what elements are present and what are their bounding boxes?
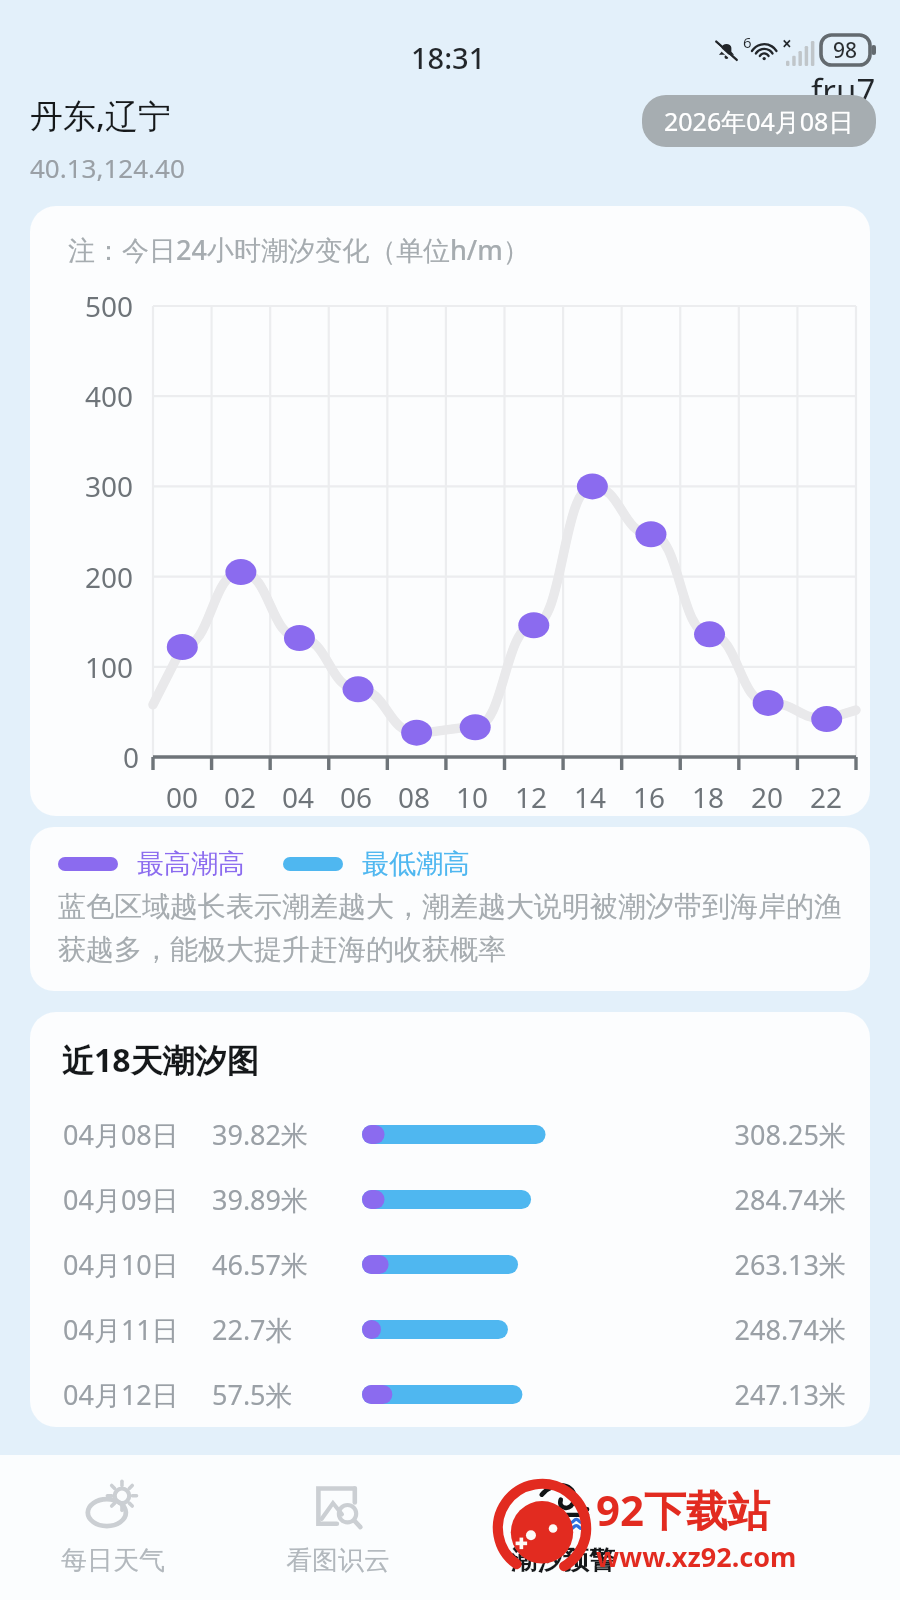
button[interactable]: 04月12日 — [30, 1362, 870, 1427]
staticText: 16 — [633, 778, 666, 816]
button[interactable]: 04月11日 — [30, 1297, 870, 1362]
button[interactable]: 2026年04月08日 — [642, 95, 876, 147]
staticText: 00 — [166, 778, 199, 816]
staticText: www.xz92.com — [596, 1538, 797, 1575]
staticText: 247.13米 — [651, 1376, 846, 1413]
staticText: 06 — [340, 778, 373, 816]
staticText: 57.5米 — [212, 1376, 362, 1413]
staticText: 02 — [224, 778, 257, 816]
staticText: 20 — [751, 778, 784, 816]
staticText: 248.74米 — [651, 1311, 846, 1348]
button[interactable]: 每日天气 — [0, 1455, 225, 1600]
staticText: 18:31 — [411, 38, 486, 77]
staticText: 丹东,辽宁 — [30, 93, 172, 138]
staticText: 04 — [282, 778, 315, 816]
staticText: 100 — [85, 648, 134, 686]
button[interactable]: 潮汐预警 — [450, 1455, 675, 1600]
button[interactable]: 04月08日 — [30, 1102, 870, 1167]
other: 每日天气 — [85, 1479, 141, 1535]
button[interactable]: 04月10日 — [30, 1232, 870, 1297]
staticText: 263.13米 — [651, 1246, 846, 1283]
button[interactable]: 04月09日 — [30, 1167, 870, 1232]
staticText: 10 — [456, 778, 489, 816]
staticText: 04月08日 — [63, 1116, 198, 1153]
other: 潮汐预警 — [535, 1479, 591, 1535]
staticText: 04月10日 — [63, 1246, 198, 1283]
staticText: fru7 — [811, 68, 876, 113]
button[interactable]: 看图识云 — [225, 1455, 450, 1600]
staticText: 92下载站 — [596, 1481, 771, 1538]
staticText: 0 — [123, 738, 140, 776]
staticText: 注：今日24小时潮汐变化（单位h/m） — [68, 231, 530, 268]
staticText: 300 — [85, 467, 134, 505]
staticText: 39.89米 — [212, 1181, 362, 1218]
staticText: 04月12日 — [63, 1376, 198, 1413]
staticText: 98 — [833, 36, 858, 65]
staticText: 每日天气 — [61, 1544, 165, 1577]
staticText: 蓝色区域越长表示潮差越大，潮差越大说明被潮汐带到海岸的渔获越多，能极大提升赶海的… — [58, 889, 848, 967]
staticText: 14 — [574, 778, 607, 816]
staticText: 400 — [85, 377, 134, 415]
staticText: 04月09日 — [63, 1181, 198, 1218]
staticText: 39.82米 — [212, 1116, 362, 1153]
staticText: 22 — [810, 778, 843, 816]
staticText: 6 — [743, 32, 752, 52]
staticText: 潮汐预警 — [511, 1544, 615, 1577]
staticText: 12 — [515, 778, 548, 816]
staticText: 46.57米 — [212, 1246, 362, 1283]
staticText: 308.25米 — [651, 1116, 846, 1153]
staticText: 18 — [692, 778, 725, 816]
other: 看图识云 — [310, 1479, 366, 1535]
staticText: 284.74米 — [651, 1181, 846, 1218]
staticText: 40.13,124.40 — [30, 150, 185, 185]
staticText: 看图识云 — [286, 1544, 390, 1577]
staticText: 2026年04月08日 — [664, 104, 854, 138]
staticText: × — [782, 32, 792, 55]
staticText: 04月11日 — [63, 1311, 198, 1348]
staticText: 08 — [398, 778, 431, 816]
staticText: 22.7米 — [212, 1311, 362, 1348]
staticText: 最低潮高 — [362, 847, 470, 881]
staticText: 近18天潮汐图 — [62, 1038, 259, 1082]
staticText: 200 — [85, 558, 134, 596]
staticText: 最高潮高 — [137, 847, 245, 881]
staticText: 500 — [85, 287, 134, 325]
